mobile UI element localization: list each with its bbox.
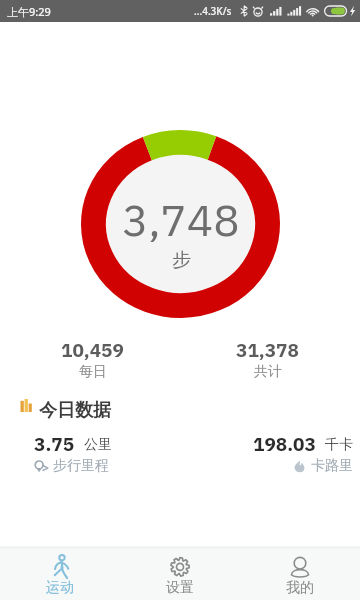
staticText: 卡路里 bbox=[311, 457, 353, 475]
staticText: 10,459 bbox=[61, 338, 124, 363]
staticText: 3,748 bbox=[122, 191, 240, 248]
staticText: ...4.3K/s bbox=[194, 4, 232, 18]
staticText: 我的 bbox=[286, 579, 314, 597]
staticText: 198.03 bbox=[253, 432, 316, 457]
staticText: 今日数据 bbox=[39, 399, 111, 422]
button[interactable]: 198.03 bbox=[193, 432, 353, 475]
staticText: 每日 bbox=[79, 363, 107, 381]
button[interactable]: Exercise bbox=[0, 549, 120, 600]
staticText: 公里 bbox=[84, 436, 112, 454]
staticText: 设置 bbox=[166, 579, 194, 597]
staticText: 步 bbox=[172, 248, 191, 272]
staticText: 共计 bbox=[254, 363, 282, 381]
staticText: 千卡 bbox=[325, 436, 353, 454]
staticText: 步行里程 bbox=[53, 457, 109, 475]
staticText: 上午9:29 bbox=[7, 4, 51, 19]
button[interactable]: Settings bbox=[120, 549, 240, 600]
button[interactable]: 10,459 bbox=[5, 338, 180, 381]
staticText: 3.75 bbox=[34, 432, 75, 457]
button[interactable]: 3.75 bbox=[34, 432, 193, 475]
button[interactable]: Profile bbox=[240, 549, 360, 600]
staticText: 31,378 bbox=[236, 338, 299, 363]
button[interactable]: 31,378 bbox=[180, 338, 355, 381]
staticText: 运动 bbox=[46, 579, 74, 597]
